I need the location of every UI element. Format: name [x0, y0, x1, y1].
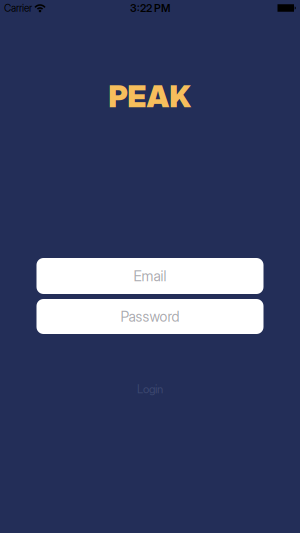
staticText: Login — [137, 382, 163, 396]
staticText: Password — [120, 308, 179, 325]
staticText: 3:22 PM — [130, 2, 170, 14]
staticText: PEAK — [108, 79, 191, 114]
staticText: Email — [133, 268, 166, 284]
staticText: Carrier — [4, 2, 32, 14]
button[interactable]: Password — [36, 299, 263, 334]
button[interactable]: Login — [137, 381, 163, 397]
button[interactable]: Email — [36, 258, 263, 294]
